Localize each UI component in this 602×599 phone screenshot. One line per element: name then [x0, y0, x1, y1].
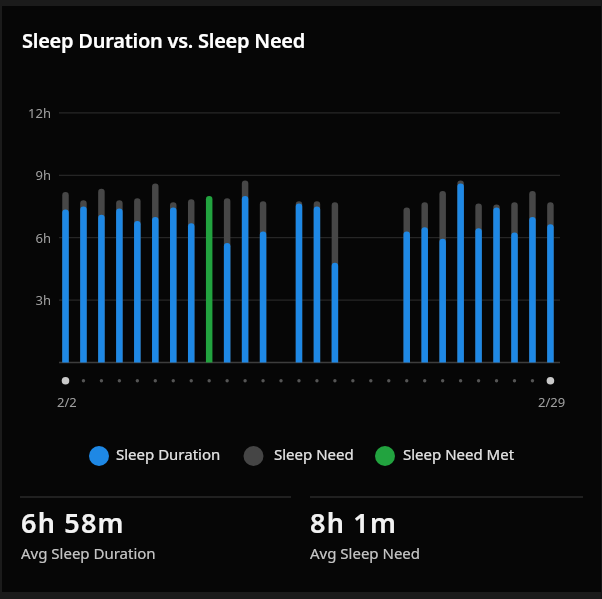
staticText: Avg Sleep Need — [310, 543, 421, 563]
staticText: Sleep Duration vs. Sleep Need — [22, 27, 306, 54]
staticText: 3h — [35, 291, 51, 309]
staticText: 2/29 — [538, 393, 566, 411]
staticText: 12h — [28, 104, 51, 122]
staticText: 9h — [35, 166, 51, 184]
staticText: Avg Sleep Duration — [21, 543, 156, 563]
staticText: 8h 1m — [310, 504, 398, 541]
staticText: 2/2 — [57, 393, 77, 411]
staticText: Sleep Need Met — [403, 444, 515, 464]
staticText: Sleep Duration — [116, 444, 221, 464]
staticText: 6h — [35, 229, 51, 247]
staticText: 6h 58m — [21, 504, 125, 541]
staticText: Sleep Need — [274, 444, 354, 464]
